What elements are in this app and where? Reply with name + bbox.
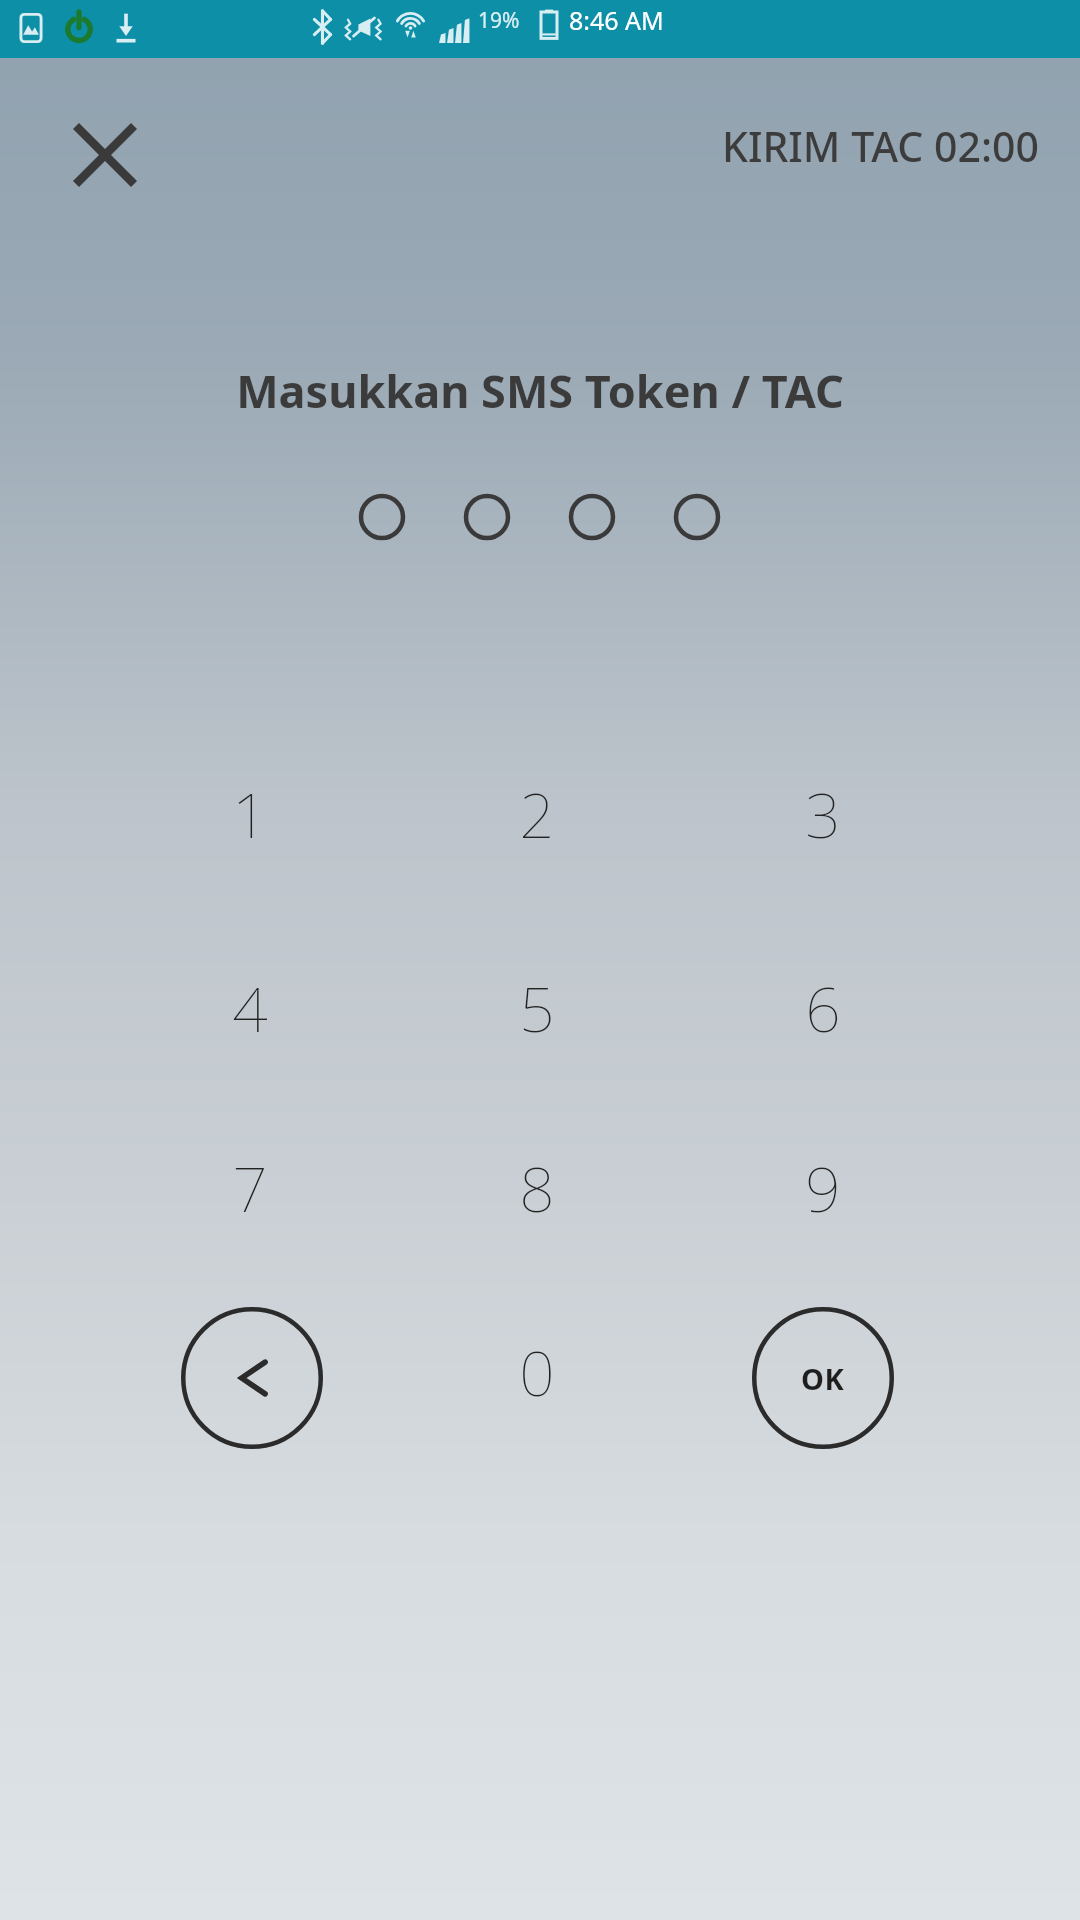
staticText: KIRIM TAC 02:00 <box>722 118 1040 174</box>
button[interactable]: 8 <box>485 1136 589 1240</box>
staticText: 8 <box>519 1146 555 1230</box>
button[interactable]: KIRIM TAC 02:00 <box>640 110 1040 182</box>
button[interactable]: 0 <box>485 1320 589 1424</box>
staticText: 0 <box>519 1330 555 1414</box>
staticText: 19% <box>478 6 520 35</box>
staticText: 9 <box>805 1146 841 1230</box>
button[interactable]: Backspace <box>180 1306 324 1450</box>
staticText: 6 <box>805 966 841 1050</box>
button[interactable]: 2 <box>485 762 589 866</box>
staticText: 5 <box>519 966 555 1050</box>
staticText: 1 <box>232 772 268 856</box>
staticText: 7 <box>232 1146 268 1230</box>
staticText: Masukkan SMS Token / TAC <box>236 360 844 421</box>
staticText: 8:46 AM <box>569 3 664 37</box>
button[interactable]: 6 <box>771 956 875 1060</box>
button[interactable]: OK <box>751 1306 895 1450</box>
button[interactable]: 3 <box>771 762 875 866</box>
button[interactable]: 7 <box>198 1136 302 1240</box>
staticText: 3 <box>805 772 841 856</box>
staticText: 4 <box>232 966 268 1050</box>
button[interactable]: 9 <box>771 1136 875 1240</box>
staticText: 2 <box>519 772 555 856</box>
button[interactable]: 5 <box>485 956 589 1060</box>
button[interactable]: Close <box>55 105 155 205</box>
button[interactable]: 1 <box>198 762 302 866</box>
staticText: OK <box>801 1359 845 1398</box>
button[interactable]: 4 <box>198 956 302 1060</box>
